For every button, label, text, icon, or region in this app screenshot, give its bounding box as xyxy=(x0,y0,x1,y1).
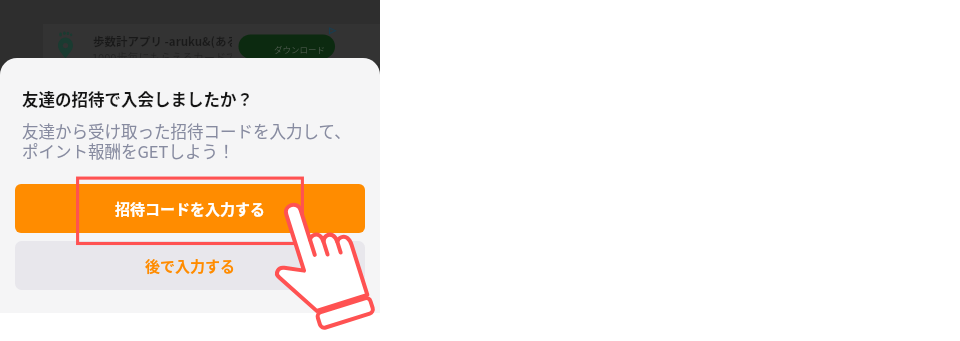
staticText: 友達の招待で入会しましたか？ xyxy=(22,87,253,111)
staticText: 招待コードを入力する xyxy=(115,198,266,220)
staticText: 後で入力する xyxy=(145,255,236,277)
staticText: 歩数計アプリ -aruku&(ある… xyxy=(93,33,250,50)
staticText: 1000歩毎にもらえるカードで賞 xyxy=(92,49,249,65)
button[interactable]: 広告 xyxy=(43,24,380,64)
button[interactable]: ダウンロード xyxy=(232,24,380,64)
button[interactable]: 後で入力する xyxy=(15,241,365,290)
staticText: 友達から受け取った招待コードを入力して、 ポイント報酬をGETしよう！ xyxy=(22,119,351,163)
staticText: ダウンロード xyxy=(274,43,326,55)
button[interactable]: 招待コードを入力する xyxy=(15,184,365,233)
